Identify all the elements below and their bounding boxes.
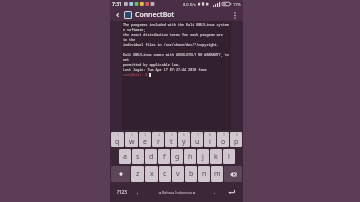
staticText: Kali GNU/Linux comes with ABSOLUTELY NO …	[123, 52, 231, 57]
button[interactable]: Back	[113, 10, 123, 20]
button[interactable]: v	[172, 166, 184, 182]
button[interactable]: 9	[217, 132, 229, 147]
staticText: .	[214, 189, 216, 196]
staticText: ?123	[117, 189, 127, 195]
staticText: e software;	[123, 27, 146, 32]
button[interactable]: Shift	[111, 166, 130, 182]
button[interactable]: b	[185, 166, 197, 182]
button[interactable]: n	[198, 166, 210, 182]
button[interactable]: 1	[111, 132, 124, 147]
staticText: Last login: Tue Apr 17 07:27:44 2018 fro…	[123, 67, 231, 72]
staticText: permitted by applicable law.	[123, 62, 180, 67]
staticText: r	[157, 137, 160, 147]
staticText: The programs included with the Kali GNU/…	[123, 22, 231, 27]
staticText: g	[175, 152, 180, 162]
staticText: m	[214, 169, 221, 179]
button[interactable]: g	[171, 149, 183, 164]
button[interactable]: a	[119, 149, 131, 164]
button[interactable]: 8	[204, 132, 216, 147]
staticText: f	[163, 152, 166, 162]
button[interactable]: x	[145, 166, 158, 182]
staticText: q	[115, 137, 120, 147]
button[interactable]: d	[145, 149, 157, 164]
button[interactable]: f	[158, 149, 170, 164]
staticText: h	[188, 152, 193, 162]
staticText: b	[189, 169, 194, 179]
button[interactable]: l	[223, 149, 235, 164]
staticText: ,	[137, 189, 139, 196]
staticText: k	[214, 152, 218, 162]
button[interactable]: m	[211, 166, 223, 182]
staticText: 5	[171, 133, 173, 137]
button[interactable]: c	[159, 166, 171, 182]
staticText: 0	[236, 133, 238, 137]
staticText: e	[143, 137, 147, 147]
staticText: z	[136, 169, 140, 179]
staticText: w	[129, 137, 135, 147]
button[interactable]: ?123	[111, 184, 132, 200]
button[interactable]: 3	[139, 132, 151, 147]
staticText: root@kali:~#	[123, 72, 148, 77]
staticText: in the	[123, 37, 136, 42]
staticText: the exact distribution terms for each pr…	[123, 32, 231, 37]
button[interactable]: ◄ Bahasa Indonesia ►	[144, 184, 209, 200]
staticText: y	[182, 137, 186, 147]
button[interactable]: 6	[178, 132, 190, 147]
button[interactable]: ,	[133, 184, 143, 200]
staticText: u	[195, 137, 200, 147]
staticText: t	[170, 137, 173, 147]
button[interactable]: The programs included with the Kali GNU/…	[123, 22, 231, 130]
staticText: d	[149, 152, 154, 162]
staticText: 8	[209, 133, 211, 137]
button[interactable]: k	[210, 149, 222, 164]
staticText: o	[221, 137, 226, 147]
staticText: ◄ Bahasa Indonesia ►	[158, 190, 196, 195]
button[interactable]: 4	[152, 132, 164, 147]
staticText: p	[234, 137, 239, 147]
button[interactable]: 2	[125, 132, 138, 147]
staticText: s	[136, 152, 140, 162]
button[interactable]: .	[210, 184, 220, 200]
staticText: 3	[144, 133, 146, 137]
button[interactable]: j	[197, 149, 209, 164]
staticText: ConnectBot	[135, 10, 175, 20]
button[interactable]: h	[184, 149, 196, 164]
button[interactable]: s	[132, 149, 144, 164]
staticText: 6	[183, 133, 185, 137]
button[interactable]: Enter	[221, 184, 242, 200]
staticText: ent	[123, 57, 130, 62]
button[interactable]: z	[131, 166, 144, 182]
button[interactable]: Backspace	[224, 166, 242, 182]
button[interactable]: 5	[165, 132, 177, 147]
staticText: c	[163, 169, 167, 179]
button[interactable]: 7	[191, 132, 203, 147]
staticText: n	[202, 169, 207, 179]
staticText: i	[209, 137, 211, 147]
staticText: 17%	[233, 2, 241, 7]
staticText: 7:31	[112, 1, 122, 8]
staticText: 4	[158, 133, 160, 137]
staticText: v	[176, 169, 180, 179]
staticText: a	[123, 152, 127, 162]
staticText: 1	[117, 133, 119, 137]
staticText: 8.0 K/s	[183, 2, 196, 7]
button[interactable]: More options	[230, 10, 240, 20]
staticText: j	[202, 152, 204, 162]
staticText: x	[150, 169, 154, 179]
staticText: 7	[197, 133, 199, 137]
staticText: l	[228, 152, 230, 162]
staticText: individual files in /usr/share/doc/*/cop…	[123, 42, 219, 47]
staticText: 2	[131, 133, 133, 137]
button[interactable]: 0	[230, 132, 242, 147]
staticText: 9	[223, 133, 225, 137]
